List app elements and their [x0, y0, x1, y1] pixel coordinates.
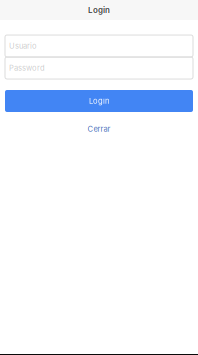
staticText: Password: [9, 63, 45, 73]
staticText: Usuario: [9, 41, 37, 51]
button[interactable]: Cerrar: [75, 122, 122, 136]
staticText: Login: [89, 96, 109, 106]
staticText: Login: [88, 5, 110, 15]
button[interactable]: Login: [5, 90, 193, 112]
staticText: Cerrar: [87, 124, 110, 134]
